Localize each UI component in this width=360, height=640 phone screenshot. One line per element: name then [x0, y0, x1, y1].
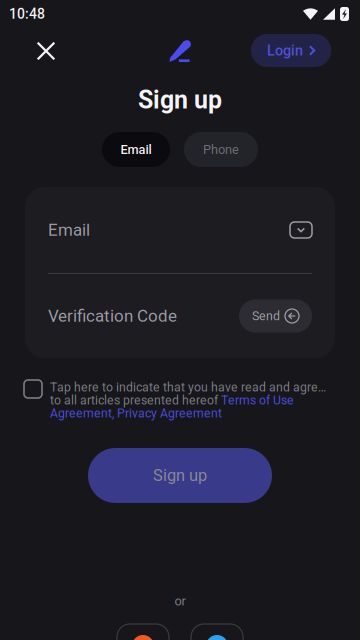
- staticText: Terms of Use: [221, 393, 294, 407]
- staticText: Send: [252, 309, 280, 323]
- staticText: Sign up: [153, 466, 207, 485]
- button[interactable]: Phone: [184, 132, 258, 167]
- button[interactable]: Email: [102, 132, 170, 167]
- staticText: Login: [267, 42, 303, 59]
- button[interactable]: Close: [29, 34, 63, 68]
- staticText: Agreement, Privacy Agreement: [50, 406, 222, 420]
- button[interactable]: Send: [239, 299, 312, 332]
- staticText: or: [174, 593, 185, 608]
- staticText: 10:48: [9, 6, 45, 22]
- staticText: Tap here to indicate that you have read …: [50, 380, 330, 394]
- button[interactable]: Sign up with Telegram: [191, 624, 243, 640]
- staticText: Email: [48, 220, 90, 240]
- button[interactable]: Sign up: [88, 448, 272, 503]
- staticText: Email: [120, 142, 151, 157]
- staticText: Phone: [203, 142, 239, 157]
- staticText: Sign up: [138, 85, 222, 115]
- button[interactable]: Tap here to indicate that you have read …: [24, 380, 322, 420]
- button[interactable]: Login: [251, 34, 331, 67]
- staticText: Verification Code: [48, 306, 177, 326]
- staticText: to all articles presented hereof: [50, 393, 221, 407]
- button[interactable]: Choose email domain: [290, 222, 312, 238]
- button[interactable]: Sign up with Reddit: [117, 624, 169, 640]
